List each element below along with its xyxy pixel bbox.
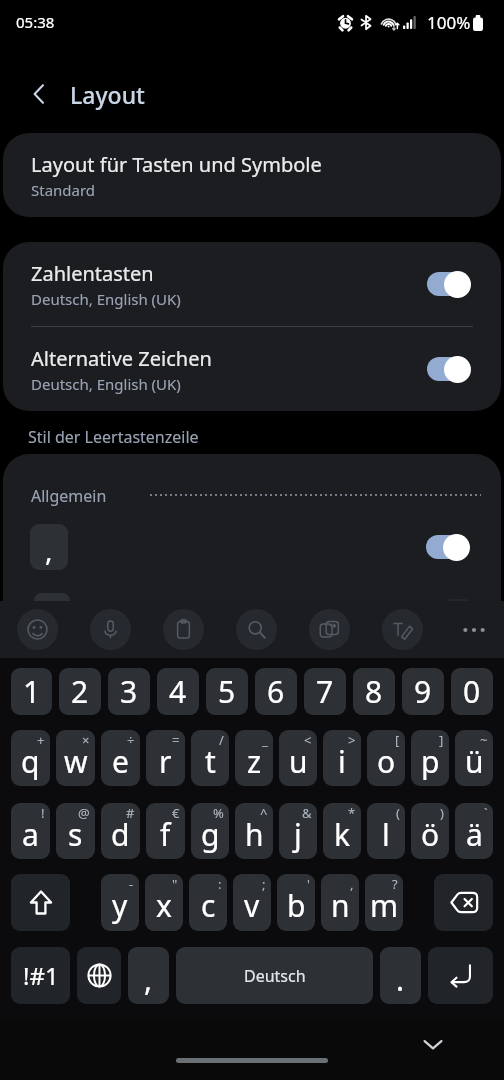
button[interactable]: # [101, 803, 140, 859]
staticText: Deutsch, English (UK) [31, 289, 181, 309]
button[interactable]: Layout für Tasten und Symbole [3, 133, 501, 217]
button[interactable]: * [323, 803, 361, 859]
button[interactable]: Search [236, 609, 277, 650]
button[interactable]: Emoji [17, 609, 58, 650]
button[interactable]: Deutsch [176, 947, 373, 1004]
button[interactable]: 0 [451, 668, 493, 715]
button[interactable]: 6 [255, 668, 297, 715]
staticText: = [172, 731, 180, 749]
button[interactable]: _ [235, 730, 273, 786]
button[interactable]: " [145, 874, 183, 931]
button[interactable]: Translate [309, 609, 350, 650]
staticText: v [244, 885, 260, 926]
button[interactable]: 7 [304, 668, 346, 715]
button[interactable]: % [191, 803, 229, 859]
button[interactable]: Handwriting [382, 609, 423, 650]
staticText: 5 [218, 671, 236, 712]
staticText: a [22, 814, 39, 855]
button[interactable]: ÷ [101, 730, 140, 786]
button[interactable]: ! [11, 803, 50, 859]
button[interactable]: 2 [59, 668, 101, 715]
staticText: k [334, 814, 351, 855]
button[interactable]: Change language [77, 947, 121, 1004]
button[interactable]: !#1 [11, 947, 70, 1004]
button[interactable]: , [128, 947, 169, 1004]
staticText: ^ [260, 804, 268, 822]
button[interactable]: × [56, 730, 95, 786]
button[interactable]: 4 [157, 668, 199, 715]
button[interactable]: / [191, 730, 229, 786]
button[interactable]: ' [277, 874, 315, 931]
button[interactable]: ` [455, 803, 493, 859]
button[interactable]: < [279, 730, 317, 786]
staticText: o [377, 741, 396, 782]
button[interactable]: ] [411, 730, 449, 786]
button[interactable]: [ [367, 730, 405, 786]
staticText: ! [41, 804, 45, 822]
staticText: - [129, 875, 134, 893]
button[interactable]: @ [56, 803, 95, 859]
staticText: d [111, 814, 130, 855]
button[interactable]: ^ [235, 803, 273, 859]
staticText: f [160, 814, 171, 855]
button[interactable]: = [146, 730, 185, 786]
button[interactable]: € [146, 803, 185, 859]
button[interactable]: Toggle [427, 355, 471, 383]
button[interactable]: 3 [108, 668, 150, 715]
button[interactable]: ) [411, 803, 449, 859]
staticText: [ [395, 731, 400, 749]
staticText: 05:38 [16, 12, 55, 32]
button[interactable]: Toggle [427, 270, 471, 298]
staticText: Deutsch [244, 965, 306, 987]
button[interactable]: 5 [206, 668, 248, 715]
button[interactable]: 9 [402, 668, 444, 715]
button[interactable]: ? [365, 874, 403, 931]
button[interactable]: . [380, 947, 421, 1004]
staticText: % [213, 804, 224, 822]
button[interactable]: & [279, 803, 317, 859]
staticText: t [205, 741, 216, 782]
button[interactable]: Hide keyboard [414, 1025, 452, 1063]
staticText: y [112, 885, 128, 926]
staticText: , [45, 531, 53, 569]
button[interactable]: 8 [353, 668, 395, 715]
staticText: 3 [120, 671, 138, 712]
button[interactable]: More options [455, 611, 493, 649]
button[interactable]: Backspace [434, 874, 493, 931]
staticText: ' [307, 875, 310, 893]
staticText: € [172, 804, 180, 822]
staticText: ` [484, 804, 488, 822]
button[interactable]: - [101, 874, 139, 931]
button[interactable]: Zahlentasten [3, 242, 501, 326]
button[interactable]: Back [17, 72, 61, 116]
staticText: , [350, 875, 354, 893]
button[interactable]: ( [367, 803, 405, 859]
button[interactable]: , [321, 874, 359, 931]
staticText: : [218, 875, 222, 893]
button[interactable]: Alternative Zeichen [3, 327, 501, 411]
staticText: 0 [463, 671, 481, 712]
button[interactable]: Enter [428, 947, 493, 1004]
staticText: 7 [316, 671, 334, 712]
button[interactable]: > [323, 730, 361, 786]
staticText: c [201, 885, 216, 926]
staticText: @ [78, 804, 90, 822]
button[interactable]: ~ [455, 730, 493, 786]
staticText: Zahlentasten [31, 260, 154, 287]
staticText: ö [421, 814, 440, 855]
button[interactable]: + [11, 730, 50, 786]
staticText: ] [439, 731, 444, 749]
button[interactable]: : [189, 874, 227, 931]
button[interactable]: ; [233, 874, 271, 931]
button[interactable]: Shift [11, 874, 70, 931]
staticText: > [348, 731, 356, 749]
staticText: x [156, 885, 172, 926]
staticText: Alternative Zeichen [31, 345, 212, 372]
button[interactable]: Clipboard [163, 609, 204, 650]
button[interactable]: Voice input [90, 609, 131, 650]
button[interactable]: 1 [11, 668, 52, 715]
staticText: ~ [480, 731, 488, 749]
staticText: Stil der Leertastenzeile [28, 426, 199, 448]
button[interactable]: Toggle [426, 533, 470, 561]
staticText: h [245, 814, 264, 855]
